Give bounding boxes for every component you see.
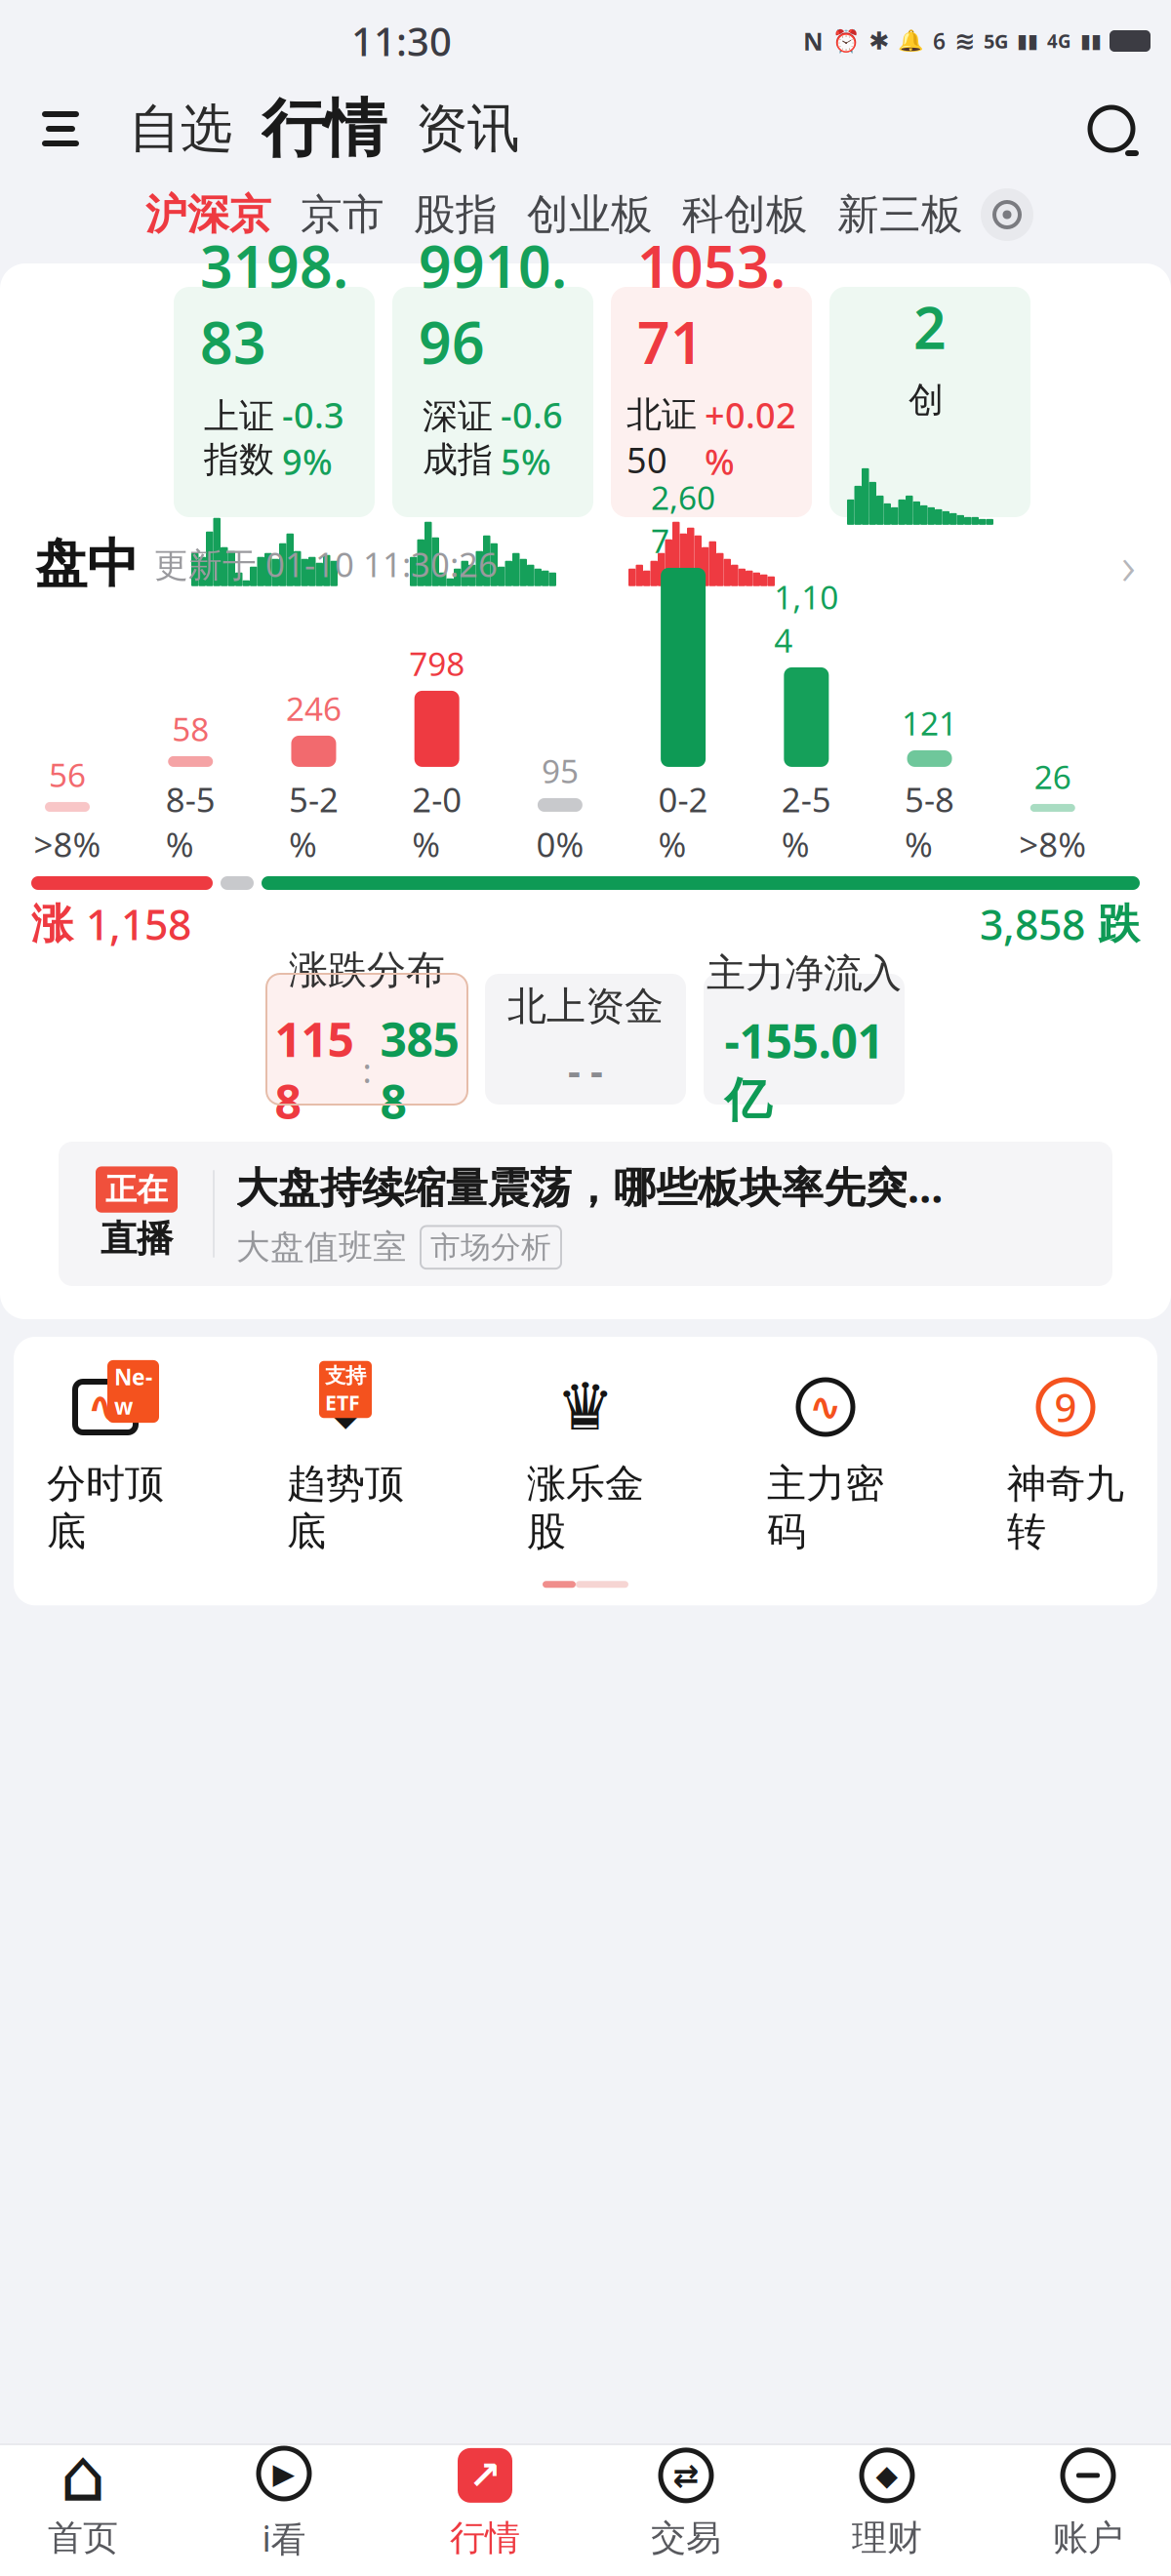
staticText: 盘中 <box>35 532 139 596</box>
staticText: 95 <box>541 749 579 792</box>
staticText: 支持ETF <box>325 1363 366 1416</box>
button[interactable]: 3198.83 <box>174 287 375 517</box>
staticText: ⌂ <box>60 2434 106 2517</box>
staticText: 9910.96 <box>419 228 567 380</box>
staticText: 涨乐金股 <box>527 1460 644 1556</box>
staticText: 2-0% <box>412 777 462 866</box>
staticText: 直播 <box>101 1216 173 1261</box>
staticText: ◆ <box>876 2459 898 2492</box>
staticText: 正在 <box>105 1170 168 1209</box>
button[interactable]: ▶ <box>226 2445 342 2560</box>
staticText: 股指 <box>414 189 498 240</box>
staticText: -0.39% <box>282 391 344 485</box>
staticText: New <box>114 1362 152 1421</box>
staticText: ▮▮ <box>1017 30 1038 52</box>
staticText: 更新于 01-10 11:30:26 <box>154 542 498 586</box>
staticText: 121 <box>902 701 957 745</box>
staticText: 0-2% <box>658 777 708 866</box>
button[interactable]: 股指 <box>414 189 498 240</box>
staticText: 创业板 <box>527 189 653 240</box>
staticText: ✱ <box>868 27 889 55</box>
button[interactable]: 资讯 <box>416 97 519 161</box>
staticText: 1,104 <box>774 575 839 661</box>
staticText: 主力密码 <box>767 1460 884 1556</box>
button[interactable]: ⌂ <box>25 2445 141 2560</box>
button[interactable]: 新三板 <box>837 189 963 240</box>
staticText: 大盘持续缩量震荡，哪些板块率先突… <box>236 1159 943 1214</box>
button[interactable]: 9 <box>1001 1370 1130 1556</box>
staticText: 神奇九转 <box>1007 1460 1124 1556</box>
button[interactable]: 京市 <box>301 189 384 240</box>
staticText: 北证50 <box>626 393 697 483</box>
staticText: 9 <box>1054 1381 1077 1433</box>
staticText: 京市 <box>301 189 384 240</box>
staticText: ↗ <box>468 2453 502 2498</box>
button[interactable]: 沪深京 <box>145 189 271 240</box>
staticText: 0% <box>536 822 584 866</box>
staticText: 3,858 <box>980 896 1085 952</box>
button[interactable]: 搜索 <box>1079 97 1144 161</box>
staticText: 自选 <box>129 97 232 161</box>
button[interactable]: 北上资金 <box>485 974 686 1105</box>
button[interactable]: ∿ <box>761 1370 890 1556</box>
staticText: 深证成指 <box>423 395 493 481</box>
button[interactable]: 菜单 <box>25 94 96 164</box>
staticText: i看 <box>262 2515 306 2561</box>
staticText: 沪深京 <box>145 189 271 240</box>
staticText: ▮▮ <box>1080 30 1102 52</box>
staticText: 246 <box>286 687 341 730</box>
staticText: ♛ <box>556 1370 615 1444</box>
staticText: 3198.83 <box>200 228 348 380</box>
staticText: 2 <box>913 289 947 365</box>
staticText: › <box>1121 528 1136 600</box>
staticText: ∿ <box>87 1382 124 1432</box>
button[interactable]: 盘中 <box>0 517 1171 611</box>
button[interactable]: ⬍ <box>281 1370 410 1556</box>
staticText: 分时顶底 <box>47 1460 164 1556</box>
button[interactable]: 创业板 <box>527 189 653 240</box>
button[interactable]: 9910.96 <box>392 287 593 517</box>
staticText: 跌 <box>1085 898 1140 950</box>
staticText: 798 <box>409 642 465 685</box>
staticText: 26 <box>1034 755 1071 798</box>
button[interactable]: 设置 <box>977 184 1037 245</box>
button[interactable]: 正在 <box>59 1142 1112 1286</box>
staticText: 5-8% <box>905 777 954 866</box>
button[interactable]: 主力净流入 <box>704 974 905 1105</box>
staticText: 大盘值班室 <box>236 1227 407 1268</box>
staticText: ≋ <box>954 27 975 55</box>
staticText: : <box>354 1047 380 1092</box>
staticText: N <box>803 25 824 57</box>
button[interactable]: ↗ <box>427 2445 543 2560</box>
staticText: 市场分析 <box>430 1229 551 1266</box>
staticText: 趋势顶底 <box>287 1460 404 1556</box>
button[interactable]: 科创板 <box>682 189 808 240</box>
staticText: -0.65% <box>501 391 563 485</box>
button[interactable]: ⇄ <box>628 2445 744 2560</box>
button[interactable]: 账户 <box>1030 2445 1146 2560</box>
staticText: 8-5% <box>166 777 215 866</box>
staticText: ⏰ <box>832 28 860 54</box>
button[interactable]: 行情 <box>262 90 386 167</box>
button[interactable]: 涨跌分布 <box>266 974 467 1105</box>
button[interactable]: 1053.71 <box>611 287 812 517</box>
button[interactable]: 自选 <box>129 97 232 161</box>
staticText: 3858 <box>380 1008 459 1132</box>
button[interactable]: 2 <box>829 287 1030 517</box>
staticText: 1158 <box>275 1008 354 1132</box>
staticText: 🔔 <box>898 29 924 53</box>
staticText: +0.02% <box>705 391 796 485</box>
staticText: 行情 <box>450 2516 520 2560</box>
staticText: 58 <box>172 707 209 750</box>
staticText: 账户 <box>1053 2516 1123 2560</box>
staticText: 行情 <box>262 90 386 167</box>
staticText: 5G <box>984 28 1008 54</box>
button[interactable]: ♛ <box>521 1370 650 1556</box>
staticText: 56 <box>49 753 86 796</box>
staticText: 理财 <box>852 2516 922 2560</box>
staticText: 1053.71 <box>637 228 786 380</box>
button[interactable]: ◆ <box>829 2445 945 2560</box>
staticText: >8% <box>1019 822 1086 866</box>
staticText: 上证指数 <box>204 395 274 481</box>
button[interactable]: ∿ <box>41 1370 170 1556</box>
